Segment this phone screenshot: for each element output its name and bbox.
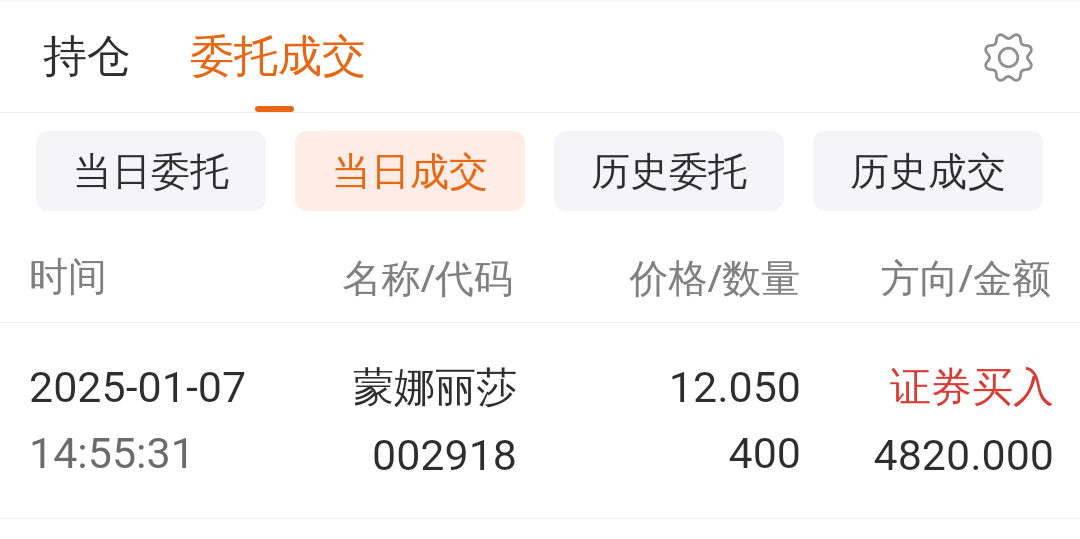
button[interactable]: 当日委托: [36, 131, 266, 211]
staticText: 12.050: [517, 362, 801, 412]
staticText: 当日委托: [73, 147, 229, 196]
button[interactable]: Settings: [972, 21, 1044, 93]
staticText: 400: [517, 428, 801, 478]
staticText: 时间: [29, 252, 299, 301]
button[interactable]: 2025-01-07: [0, 323, 1080, 510]
staticText: 002918: [299, 430, 517, 480]
staticText: 14:55:31: [29, 428, 299, 478]
staticText: 委托成交: [190, 29, 366, 84]
button[interactable]: 持仓: [0, 0, 161, 113]
staticText: 2025-01-07: [29, 362, 299, 412]
button[interactable]: 历史委托: [554, 131, 784, 211]
staticText: 4820.000: [801, 430, 1054, 480]
staticText: 方向/金额: [800, 250, 1051, 303]
staticText: 历史委托: [591, 147, 747, 196]
staticText: 证券买入: [801, 362, 1054, 414]
button[interactable]: 委托成交: [161, 0, 395, 113]
button[interactable]: 当日成交: [295, 131, 525, 211]
staticText: 历史成交: [850, 147, 1006, 196]
staticText: 价格/数量: [513, 250, 800, 303]
staticText: 名称/代码: [299, 250, 513, 303]
button[interactable]: 历史成交: [813, 131, 1043, 211]
staticText: 持仓: [43, 29, 131, 84]
staticText: 当日成交: [332, 147, 488, 196]
staticText: 蒙娜丽莎: [299, 362, 517, 414]
